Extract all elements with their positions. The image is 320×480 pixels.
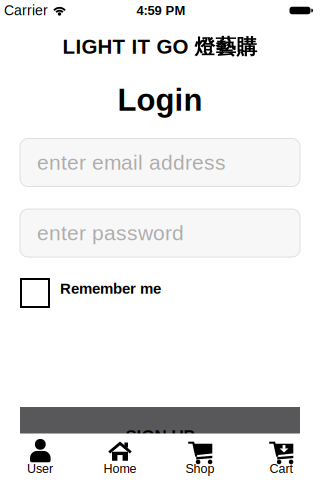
staticText: SIGN UP bbox=[125, 427, 194, 446]
staticText: Remember me bbox=[60, 280, 161, 297]
button[interactable]: Remember me bbox=[0, 279, 320, 307]
staticText: LIGHT IT GO 燈藝購 bbox=[62, 34, 257, 60]
staticText: enter password bbox=[37, 221, 184, 245]
staticText: Cart bbox=[269, 462, 292, 476]
button[interactable]: Cart bbox=[249, 433, 313, 480]
staticText: 4:59 PM bbox=[136, 3, 185, 18]
staticText: Home bbox=[103, 462, 136, 476]
staticText: Carrier bbox=[4, 3, 48, 18]
button[interactable]: SIGN UP bbox=[20, 407, 300, 451]
button[interactable]: User bbox=[8, 433, 72, 480]
button[interactable]: Home bbox=[88, 433, 152, 480]
button[interactable]: Shop bbox=[168, 433, 232, 480]
staticText: Login bbox=[117, 83, 202, 117]
staticText: User bbox=[27, 462, 53, 476]
button[interactable]: enter password bbox=[20, 209, 300, 257]
staticText: Shop bbox=[185, 462, 214, 476]
button[interactable]: enter email address bbox=[20, 138, 300, 186]
staticText: enter email address bbox=[37, 151, 226, 174]
